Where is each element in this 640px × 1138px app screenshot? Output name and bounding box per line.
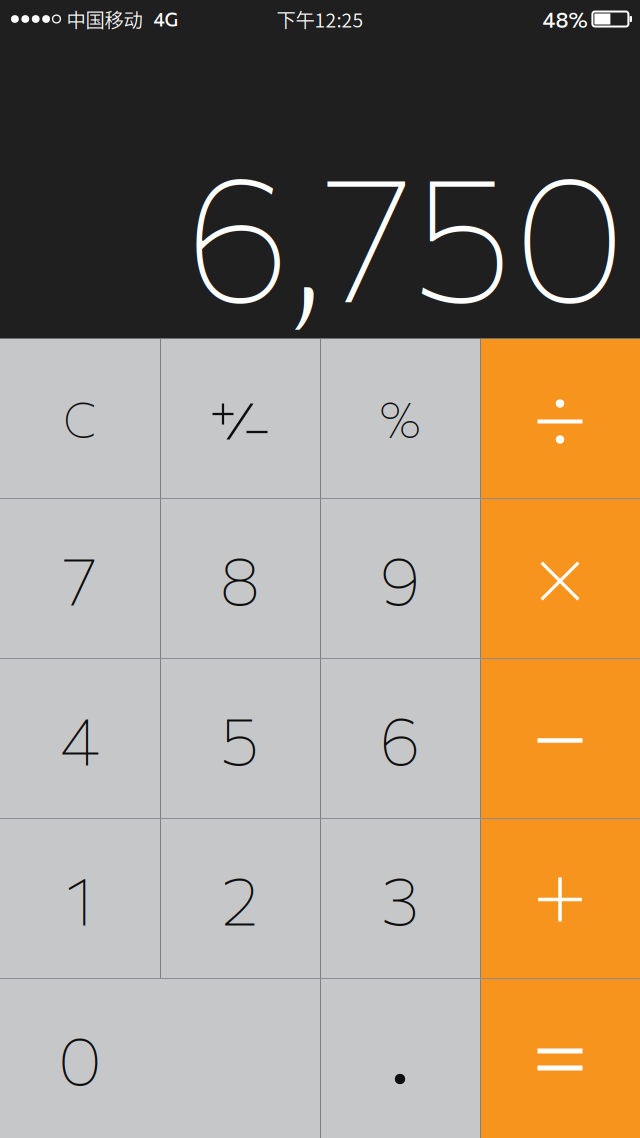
staticText: 6,750 bbox=[185, 123, 626, 338]
button[interactable]: 4 bbox=[0, 658, 160, 818]
button[interactable]: % bbox=[320, 338, 480, 498]
staticText: 下午12:25 bbox=[276, 5, 363, 33]
button[interactable] bbox=[480, 498, 640, 658]
button[interactable] bbox=[160, 338, 320, 498]
button[interactable] bbox=[480, 978, 640, 1138]
staticText: 9 bbox=[379, 536, 420, 620]
button[interactable]: 3 bbox=[320, 818, 480, 978]
button[interactable]: 1 bbox=[0, 818, 160, 978]
staticText: 4 bbox=[60, 696, 100, 780]
staticText: 2 bbox=[221, 856, 258, 940]
button[interactable]: 5 bbox=[160, 658, 320, 818]
button[interactable] bbox=[480, 658, 640, 818]
button[interactable] bbox=[320, 978, 480, 1138]
staticText: 5 bbox=[220, 696, 259, 780]
staticText: 4G bbox=[153, 8, 178, 30]
button[interactable]: 9 bbox=[320, 498, 480, 658]
staticText: C bbox=[63, 388, 97, 448]
staticText: 7 bbox=[62, 536, 97, 620]
staticText: 0 bbox=[58, 1016, 102, 1100]
staticText: 6 bbox=[379, 696, 420, 780]
button[interactable] bbox=[480, 818, 640, 978]
button[interactable]: 7 bbox=[0, 498, 160, 658]
staticText: 1 bbox=[66, 856, 94, 940]
staticText: 8 bbox=[219, 536, 260, 620]
staticText: % bbox=[379, 388, 420, 448]
button[interactable]: 6 bbox=[320, 658, 480, 818]
button[interactable] bbox=[480, 338, 640, 498]
button[interactable]: 8 bbox=[160, 498, 320, 658]
staticText: 48% bbox=[542, 6, 587, 32]
staticText: 中国移动 bbox=[66, 5, 142, 33]
button[interactable]: C bbox=[0, 338, 160, 498]
button[interactable]: 2 bbox=[160, 818, 320, 978]
staticText: 3 bbox=[381, 856, 419, 940]
button[interactable]: 0 bbox=[0, 978, 320, 1138]
